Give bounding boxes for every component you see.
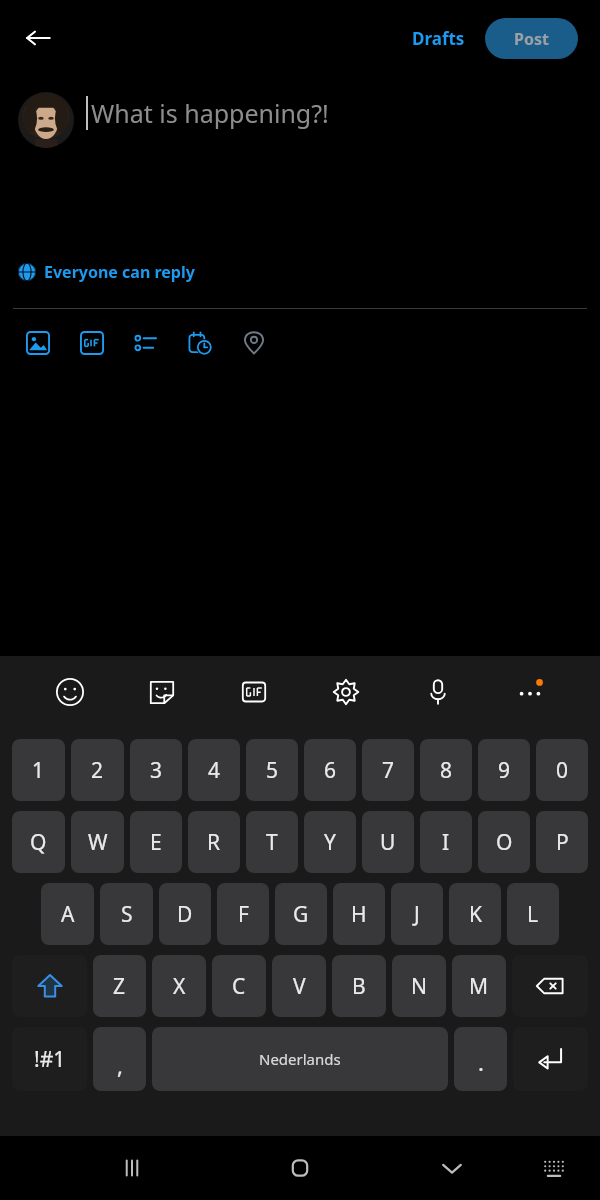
button[interactable]: Stickers (140, 670, 184, 714)
staticText: W (88, 828, 108, 857)
staticText: F (238, 900, 249, 929)
staticText: 0 (556, 756, 569, 785)
staticText: P (556, 828, 569, 857)
staticText: E (150, 828, 162, 857)
button[interactable]: Back (12, 12, 64, 64)
button[interactable]: Add GIF (80, 331, 104, 355)
button[interactable]: Z (93, 955, 146, 1017)
staticText: M (469, 972, 489, 1001)
button[interactable]: P (536, 811, 588, 873)
staticText: 4 (208, 756, 221, 785)
staticText: J (414, 900, 420, 929)
button[interactable]: Recents (108, 1144, 156, 1192)
button[interactable]: X (152, 955, 206, 1017)
button[interactable]: L (507, 883, 559, 945)
button[interactable]: Add photo (26, 331, 50, 355)
staticText: O (496, 828, 513, 857)
button[interactable]: Add location (242, 331, 266, 355)
button[interactable]: E (130, 811, 182, 873)
staticText: Everyone can reply (44, 261, 195, 283)
staticText: 8 (440, 756, 453, 785)
button[interactable]: A (41, 883, 94, 945)
button[interactable]: More options (508, 670, 552, 714)
button[interactable]: H (333, 883, 385, 945)
button[interactable]: , (93, 1027, 146, 1091)
button[interactable]: 0 (536, 739, 588, 801)
button[interactable]: 4 (188, 739, 240, 801)
staticText: D (177, 900, 193, 929)
staticText: 1 (32, 756, 45, 785)
button[interactable]: Backspace (512, 955, 588, 1017)
staticText: A (61, 900, 75, 929)
staticText: 7 (382, 756, 395, 785)
button[interactable]: Everyone can reply (14, 256, 199, 288)
staticText: R (207, 828, 221, 857)
button[interactable]: J (391, 883, 443, 945)
button[interactable]: Switch keyboard (532, 1146, 576, 1190)
button[interactable]: O (478, 811, 530, 873)
button[interactable]: C (212, 955, 266, 1017)
button[interactable]: 2 (71, 739, 124, 801)
staticText: . (478, 1047, 484, 1077)
button[interactable]: 6 (304, 739, 356, 801)
staticText: Nederlands (259, 1049, 341, 1069)
button[interactable]: I (420, 811, 472, 873)
button[interactable]: T (246, 811, 298, 873)
button[interactable]: Emoji (48, 670, 92, 714)
staticText: T (266, 828, 278, 857)
button[interactable]: 3 (130, 739, 182, 801)
staticText: B (352, 972, 366, 1001)
button[interactable]: . (454, 1027, 507, 1091)
staticText: V (293, 972, 306, 1001)
staticText: Q (30, 828, 47, 857)
button[interactable]: Schedule post (188, 331, 212, 355)
staticText: Post (514, 28, 549, 50)
button[interactable]: Home (276, 1144, 324, 1192)
staticText: N (411, 972, 427, 1001)
button[interactable]: 8 (420, 739, 472, 801)
staticText: X (173, 972, 186, 1001)
staticText: !#1 (34, 1045, 66, 1074)
button[interactable]: D (159, 883, 211, 945)
button[interactable]: M (452, 955, 506, 1017)
button[interactable]: Post (485, 18, 578, 59)
button[interactable]: GIF keyboard (232, 670, 276, 714)
button[interactable]: Y (304, 811, 356, 873)
button[interactable]: V (272, 955, 326, 1017)
button[interactable]: K (449, 883, 501, 945)
staticText: K (469, 900, 482, 929)
button[interactable]: N (392, 955, 446, 1017)
button[interactable]: !#1 (12, 1027, 87, 1091)
button[interactable]: 5 (246, 739, 298, 801)
staticText: C (232, 972, 246, 1001)
button[interactable]: W (71, 811, 124, 873)
button[interactable]: Nederlands (152, 1027, 448, 1091)
staticText: 5 (266, 756, 279, 785)
button[interactable]: F (217, 883, 269, 945)
button[interactable]: Drafts (406, 21, 471, 56)
button[interactable]: 9 (478, 739, 530, 801)
button[interactable]: S (100, 883, 153, 945)
button[interactable]: Q (12, 811, 65, 873)
staticText: I (442, 828, 450, 857)
button[interactable]: Add poll (134, 331, 158, 355)
staticText: 2 (91, 756, 104, 785)
button[interactable]: Keyboard settings (324, 670, 368, 714)
staticText: H (351, 900, 367, 929)
button[interactable]: Hide keyboard (428, 1144, 476, 1192)
staticText: 6 (324, 756, 337, 785)
button[interactable]: 1 (12, 739, 65, 801)
button[interactable]: Voice input (416, 670, 460, 714)
button[interactable]: G (275, 883, 327, 945)
button[interactable]: U (362, 811, 414, 873)
button[interactable]: R (188, 811, 240, 873)
button[interactable]: Shift (12, 955, 87, 1017)
button[interactable]: Enter (513, 1027, 588, 1091)
button[interactable]: 7 (362, 739, 414, 801)
staticText: 3 (150, 756, 163, 785)
staticText: What is happening?! (91, 96, 329, 130)
staticText: , (117, 1050, 123, 1080)
button[interactable]: B (332, 955, 386, 1017)
staticText: S (121, 900, 133, 929)
staticText: Z (113, 972, 126, 1001)
